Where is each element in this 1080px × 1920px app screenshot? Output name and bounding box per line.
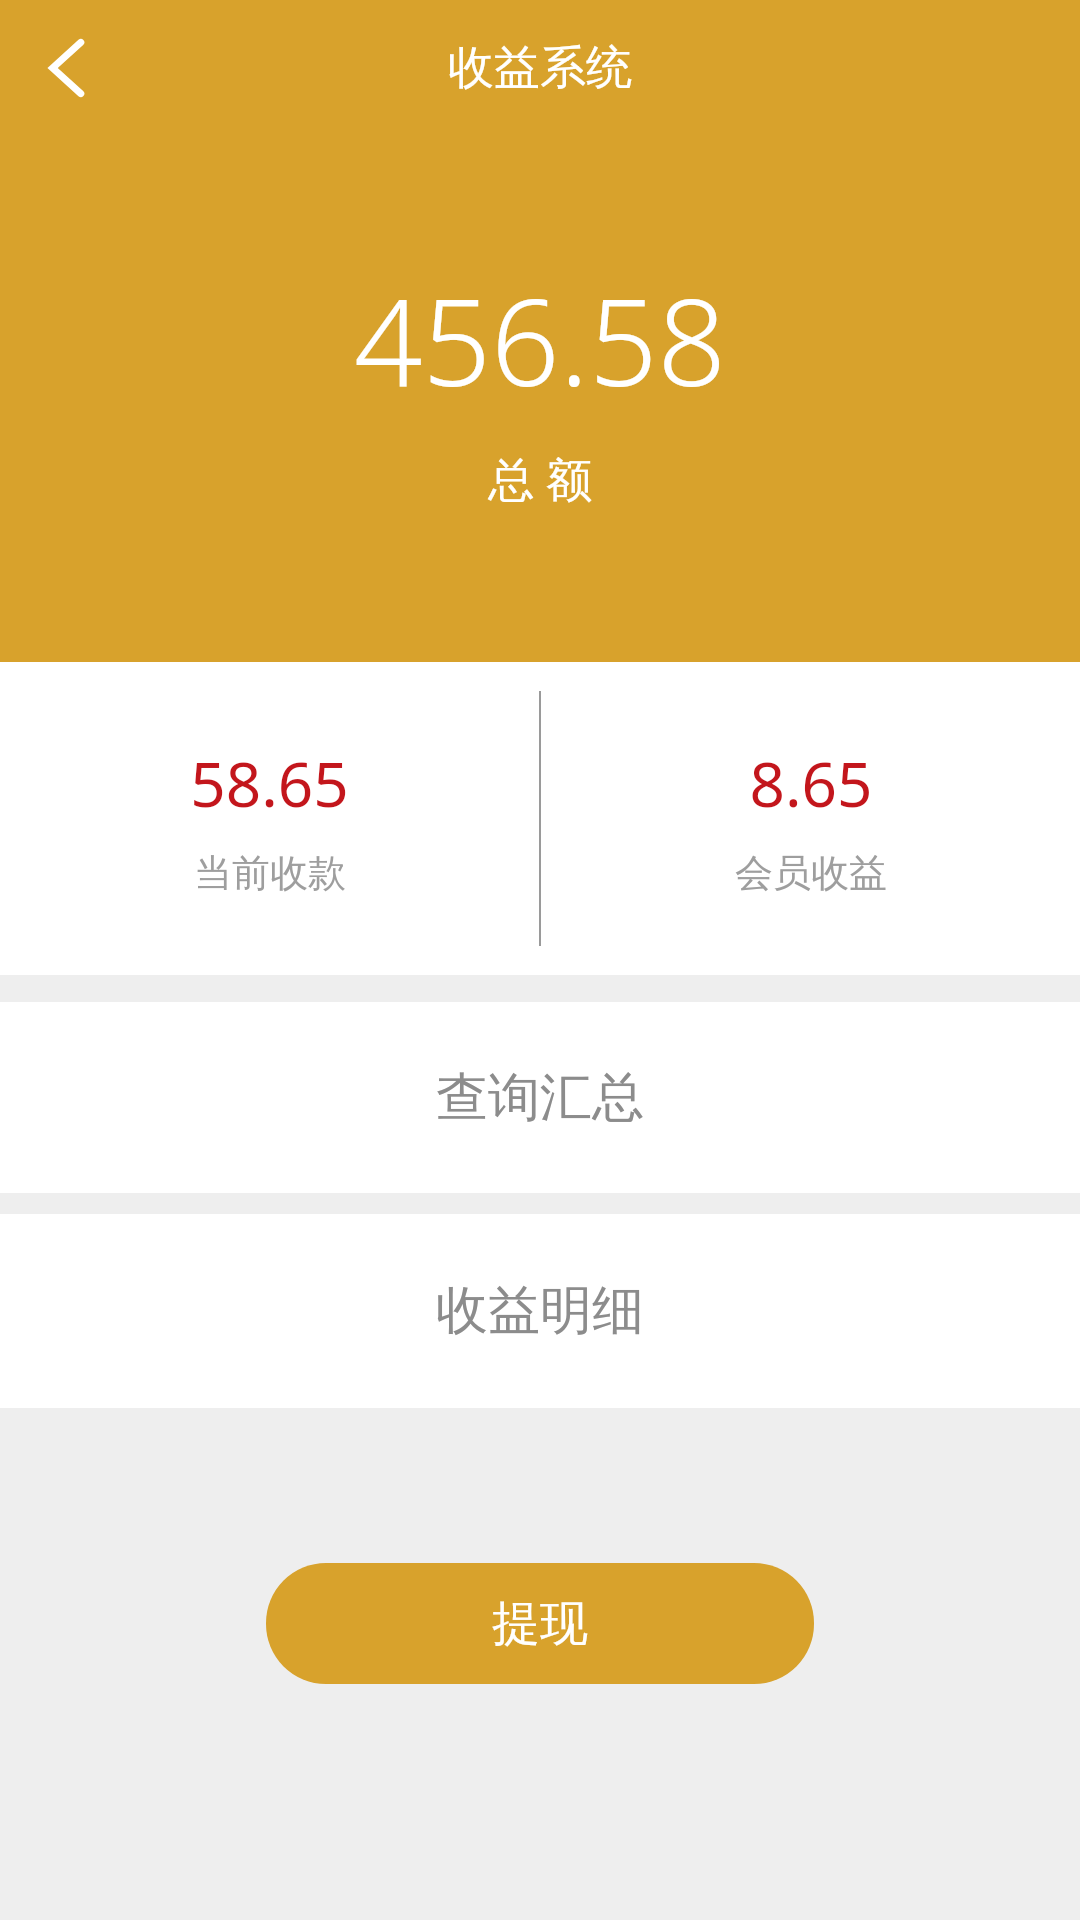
button[interactable]: 8.65 (541, 662, 1080, 975)
staticText: 456.58 (354, 258, 726, 421)
button[interactable]: 查询汇总 (0, 1002, 1080, 1193)
staticText: 查询汇总 (436, 1065, 644, 1131)
staticText: 收益系统 (448, 39, 632, 97)
button[interactable]: 收益明细 (0, 1214, 1080, 1408)
button[interactable]: 58.65 (0, 662, 539, 975)
staticText: 提现 (492, 1594, 588, 1654)
staticText: 总 额 (488, 447, 592, 510)
button[interactable]: 提现 (266, 1563, 814, 1684)
staticText: 当前收款 (194, 849, 346, 897)
staticText: 会员收益 (735, 849, 887, 897)
staticText: 8.65 (749, 741, 873, 825)
staticText: 58.65 (190, 741, 349, 825)
button[interactable]: Back (14, 14, 122, 122)
staticText: 收益明细 (436, 1278, 644, 1344)
